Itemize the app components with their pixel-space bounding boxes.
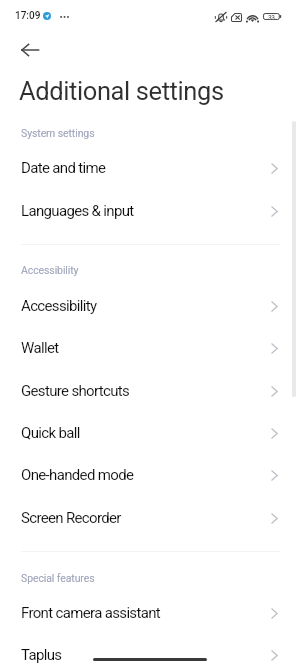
button[interactable]: Gesture shortcuts [0,370,300,412]
staticText: Wallet [21,339,271,357]
button[interactable]: One-handed mode [0,454,300,496]
button[interactable]: Accessibility [0,285,300,327]
staticText: Accessibility [21,264,79,276]
staticText: One-handed mode [21,466,271,484]
staticText: Special features [21,572,95,584]
button[interactable]: Back [13,33,47,67]
button[interactable]: Screen Recorder [0,497,300,539]
button[interactable]: Front camera assistant [0,592,300,634]
staticText: Additional settings [19,76,224,106]
staticText: Gesture shortcuts [21,382,271,400]
staticText: Taplus [21,646,271,664]
staticText: 17:09 [15,10,41,22]
button[interactable]: Wallet [0,327,300,369]
staticText: Quick ball [21,424,271,442]
staticText: System settings [21,127,95,139]
button[interactable]: Date and time [0,147,300,189]
staticText: Date and time [21,159,271,177]
staticText: 33 [268,14,275,22]
staticText: Accessibility [21,297,271,315]
staticText: Screen Recorder [21,509,271,527]
button[interactable]: Taplus [0,634,300,667]
staticText: Languages & input [21,202,271,220]
staticText: Front camera assistant [21,604,271,622]
button[interactable]: Languages & input [0,190,300,232]
button[interactable]: Quick ball [0,412,300,454]
